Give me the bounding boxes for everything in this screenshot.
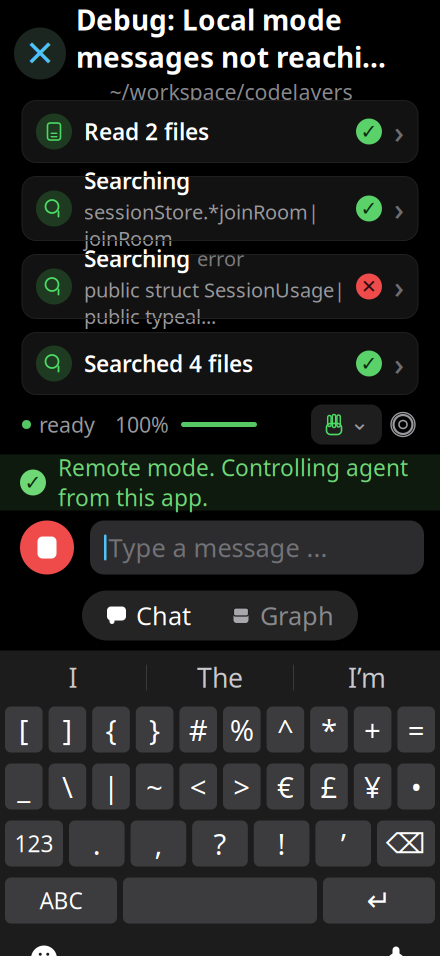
staticText: sessionStore.*joinRoom|joinRoom — [84, 198, 319, 252]
staticText: ✓ — [24, 471, 41, 494]
staticText: ✓ — [360, 197, 377, 220]
button[interactable]: Read 2 files — [22, 100, 418, 162]
button[interactable]: _ — [5, 763, 43, 809]
staticText: ABC — [39, 885, 82, 915]
staticText: › — [394, 111, 404, 152]
staticText: € — [277, 767, 294, 806]
button[interactable]: return — [323, 877, 435, 923]
button[interactable]: ¥ — [354, 763, 391, 809]
staticText: error — [197, 245, 244, 272]
staticText: _ — [17, 767, 30, 806]
button[interactable]: € — [267, 763, 304, 809]
button[interactable]: The — [147, 654, 293, 700]
staticText: ^ — [277, 710, 294, 749]
button[interactable]: + — [354, 706, 391, 752]
button[interactable]: ’ — [315, 820, 371, 866]
staticText: I — [68, 660, 77, 695]
button[interactable]: Searching — [22, 176, 418, 240]
staticText: ✓ — [360, 352, 377, 375]
staticText: 123 — [14, 828, 53, 858]
staticText: ⌫ — [386, 828, 426, 859]
button[interactable]: Settings — [382, 404, 424, 444]
staticText: = — [408, 710, 425, 749]
staticText: ~/workspace/codelayers — [109, 77, 352, 106]
staticText: Chat — [136, 599, 191, 632]
staticText: . — [93, 824, 101, 863]
button[interactable]: Searching — [22, 254, 418, 318]
button[interactable]: . — [69, 820, 125, 866]
button[interactable]: ^ — [267, 706, 304, 752]
button[interactable]: • — [397, 763, 435, 809]
staticText: Searched 4 files — [84, 348, 253, 378]
button[interactable]: Close — [14, 27, 66, 79]
button[interactable]: 123 — [5, 820, 63, 866]
button[interactable]: Searched 4 files — [22, 332, 418, 394]
button[interactable]: = — [397, 706, 435, 752]
button[interactable]: I’m — [294, 654, 440, 700]
staticText: ! — [278, 824, 286, 863]
staticText: 100% — [115, 410, 169, 439]
button[interactable]: ABC — [5, 877, 117, 923]
staticText: Remote mode. Controlling agent from this… — [58, 452, 408, 513]
staticText: ’ — [341, 824, 346, 863]
button[interactable]: } — [136, 706, 173, 752]
staticText: \ — [62, 767, 73, 806]
staticText: % — [230, 710, 254, 749]
staticText: £ — [320, 767, 337, 806]
staticText: [ — [19, 710, 29, 749]
staticText: › — [394, 188, 404, 229]
button[interactable]: { — [92, 706, 130, 752]
button[interactable]: Graph — [211, 590, 354, 640]
staticText: ↵ — [366, 884, 391, 917]
staticText: › — [394, 266, 404, 307]
staticText: The — [197, 660, 243, 695]
staticText: | — [103, 767, 119, 806]
button[interactable]: < — [179, 763, 217, 809]
button[interactable]: ! — [254, 820, 309, 866]
staticText: Debug: Local mode messages not reachi... — [76, 1, 386, 76]
staticText: * — [321, 710, 337, 749]
button[interactable]: \ — [49, 763, 86, 809]
staticText: ✕ — [361, 276, 377, 297]
staticText: ✓ — [360, 120, 377, 143]
button[interactable]: Delete — [377, 820, 435, 866]
staticText: I’m — [348, 660, 386, 695]
staticText: + — [364, 710, 381, 749]
button[interactable]: Emoji — [22, 936, 66, 956]
button[interactable]: ? — [192, 820, 248, 866]
button[interactable]: > — [223, 763, 261, 809]
staticText: { — [105, 710, 116, 749]
staticText: ~ — [146, 767, 163, 806]
button[interactable]: ⌄ — [311, 404, 382, 444]
button[interactable]: [ — [5, 706, 43, 752]
staticText: , — [154, 824, 162, 863]
staticText: } — [149, 710, 160, 749]
button[interactable]: , — [131, 820, 186, 866]
button[interactable]: * — [310, 706, 348, 752]
button[interactable]: Dictate — [374, 936, 418, 956]
staticText: Searching — [84, 165, 190, 195]
staticText: # — [189, 710, 208, 749]
staticText: ⌄ — [350, 409, 369, 435]
button[interactable]: % — [223, 706, 261, 752]
staticText: ] — [62, 710, 72, 749]
staticText: Graph — [260, 599, 334, 632]
staticText: < — [190, 767, 207, 806]
button[interactable]: Type a message ... — [90, 520, 424, 574]
staticText: ready — [39, 410, 95, 439]
staticText: • — [411, 767, 422, 806]
button[interactable]: £ — [310, 763, 348, 809]
staticText: > — [233, 767, 250, 806]
staticText: ✕ — [25, 33, 55, 74]
button[interactable]: ] — [49, 706, 86, 752]
button[interactable]: Stop — [20, 520, 74, 574]
button[interactable]: | — [92, 763, 130, 809]
staticText: › — [394, 343, 404, 384]
button[interactable]: # — [179, 706, 217, 752]
button[interactable]: ~ — [136, 763, 173, 809]
button[interactable]: I — [0, 654, 146, 700]
button[interactable]: Chat — [86, 590, 211, 640]
staticText: Searching — [84, 243, 190, 273]
